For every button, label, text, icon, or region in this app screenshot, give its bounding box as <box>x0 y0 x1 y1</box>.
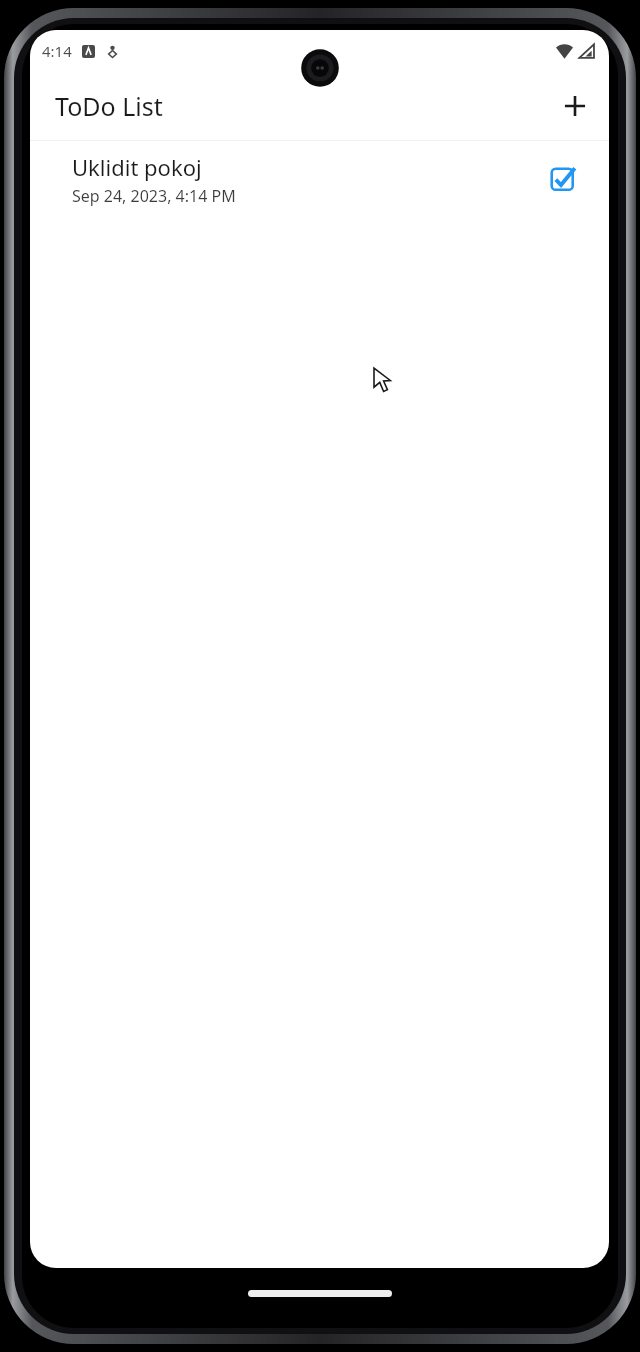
button[interactable]: Uklidit pokoj <box>30 141 609 217</box>
button[interactable]: Task completed checkbox <box>541 156 587 202</box>
button[interactable]: Add task <box>551 82 599 130</box>
staticText: 4:14 <box>42 41 72 61</box>
staticText: ToDo List <box>55 89 163 123</box>
staticText: Uklidit pokoj <box>72 152 202 182</box>
staticText: Sep 24, 2023, 4:14 PM <box>72 185 236 207</box>
